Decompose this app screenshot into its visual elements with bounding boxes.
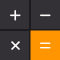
button[interactable]: Subtract [30, 0, 60, 30]
button[interactable]: Equals [30, 30, 60, 60]
button[interactable]: Multiply [0, 30, 30, 60]
button[interactable]: Add [0, 0, 30, 30]
